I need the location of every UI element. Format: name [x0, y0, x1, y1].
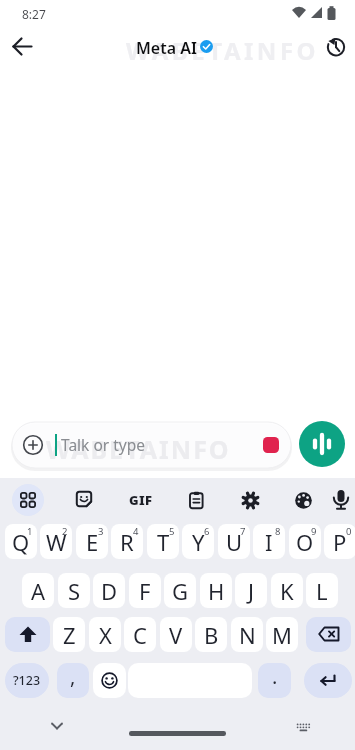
- staticText: WABETAINFO: [46, 432, 231, 466]
- staticText: Meta AI: [136, 37, 197, 59]
- button[interactable]: F: [129, 573, 161, 608]
- button[interactable]: G: [164, 573, 196, 608]
- button[interactable]: .: [258, 663, 291, 698]
- button[interactable]: L: [306, 573, 338, 608]
- staticText: F: [139, 576, 151, 606]
- button[interactable]: [71, 486, 99, 514]
- button[interactable]: Q: [5, 524, 37, 559]
- staticText: S: [68, 576, 81, 606]
- staticText: 5: [169, 525, 175, 538]
- staticText: A: [31, 576, 46, 606]
- staticText: K: [280, 576, 294, 606]
- button[interactable]: K: [271, 573, 303, 608]
- button[interactable]: ?123: [5, 663, 49, 698]
- button[interactable]: [45, 716, 69, 736]
- button[interactable]: U: [218, 524, 250, 559]
- button[interactable]: [8, 32, 36, 60]
- button[interactable]: J: [235, 573, 267, 608]
- button[interactable]: Z: [53, 617, 85, 652]
- button[interactable]: M: [266, 617, 298, 652]
- staticText: T: [157, 527, 170, 557]
- button[interactable]: N: [231, 617, 263, 652]
- button[interactable]: GIF: [126, 488, 156, 512]
- button[interactable]: R: [111, 524, 143, 559]
- button[interactable]: C: [124, 617, 156, 652]
- button[interactable]: P: [324, 524, 355, 559]
- button[interactable]: I: [253, 524, 285, 559]
- button[interactable]: [328, 484, 354, 516]
- staticText: 0: [346, 525, 352, 538]
- staticText: Q: [12, 527, 30, 557]
- staticText: Z: [63, 620, 76, 650]
- button[interactable]: X: [89, 617, 121, 652]
- button[interactable]: [304, 663, 352, 698]
- staticText: 2: [62, 525, 68, 538]
- staticText: 7: [240, 525, 246, 538]
- button[interactable]: ,: [57, 663, 89, 698]
- button[interactable]: [290, 716, 316, 738]
- staticText: .: [272, 663, 278, 690]
- staticText: J: [248, 576, 255, 606]
- staticText: 3: [98, 525, 104, 538]
- staticText: 8: [275, 525, 281, 538]
- button[interactable]: W: [40, 524, 72, 559]
- button[interactable]: [290, 487, 316, 513]
- staticText: B: [204, 620, 219, 650]
- button[interactable]: [5, 617, 50, 652]
- staticText: R: [120, 527, 134, 557]
- staticText: O: [296, 527, 314, 557]
- staticText: Y: [192, 527, 205, 557]
- staticText: M: [272, 620, 292, 650]
- staticText: D: [101, 576, 118, 606]
- button[interactable]: [237, 487, 263, 513]
- button[interactable]: [263, 437, 279, 453]
- button[interactable]: [129, 731, 226, 736]
- button[interactable]: Y: [182, 524, 214, 559]
- button[interactable]: H: [200, 573, 232, 608]
- staticText: P: [333, 527, 347, 557]
- staticText: GIF: [129, 491, 153, 509]
- staticText: 9: [311, 525, 317, 538]
- staticText: WABETAINFO: [126, 34, 320, 67]
- button[interactable]: A: [22, 573, 54, 608]
- staticText: C: [133, 620, 147, 650]
- staticText: U: [226, 527, 243, 557]
- button[interactable]: [299, 421, 345, 467]
- staticText: I: [265, 527, 273, 557]
- button[interactable]: E: [76, 524, 108, 559]
- button[interactable]: [93, 663, 126, 698]
- staticText: N: [239, 620, 256, 650]
- button[interactable]: V: [160, 617, 192, 652]
- button[interactable]: O: [289, 524, 321, 559]
- staticText: 6: [204, 525, 210, 538]
- staticText: Talk or type: [61, 434, 145, 455]
- button[interactable]: T: [147, 524, 179, 559]
- staticText: V: [169, 620, 183, 650]
- button[interactable]: [12, 422, 291, 468]
- staticText: G: [172, 576, 189, 606]
- button[interactable]: S: [58, 573, 90, 608]
- staticText: X: [99, 620, 112, 650]
- button[interactable]: [306, 617, 351, 652]
- staticText: H: [208, 576, 225, 606]
- staticText: 4: [133, 525, 139, 538]
- button[interactable]: [182, 486, 210, 514]
- button[interactable]: B: [195, 617, 227, 652]
- button[interactable]: D: [93, 573, 125, 608]
- staticText: ,: [70, 663, 76, 690]
- staticText: W: [46, 527, 67, 557]
- button[interactable]: [322, 33, 350, 61]
- staticText: L: [316, 576, 328, 606]
- staticText: E: [86, 527, 99, 557]
- staticText: ?123: [13, 672, 41, 689]
- staticText: 8:27: [22, 6, 46, 22]
- button[interactable]: [12, 484, 44, 516]
- staticText: 1: [27, 525, 33, 538]
